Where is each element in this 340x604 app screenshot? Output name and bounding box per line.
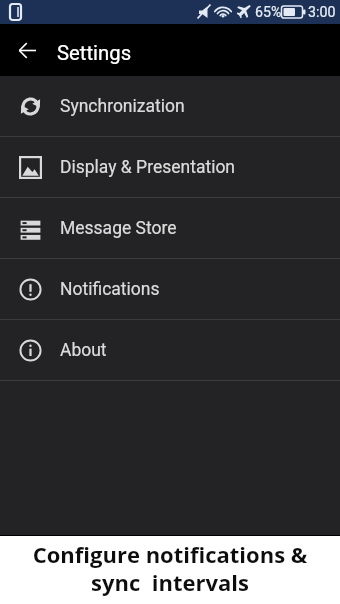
staticText: Configure notifications & sync intervals: [0, 539, 340, 598]
staticText: 3:00: [308, 4, 336, 21]
button[interactable]: Display & Presentation: [0, 137, 340, 197]
staticText: Display & Presentation: [60, 157, 236, 178]
staticText: Notifications: [60, 279, 160, 300]
button[interactable]: Synchronization: [0, 76, 340, 136]
button[interactable]: Back: [0, 24, 54, 76]
staticText: Message Store: [60, 218, 177, 239]
button[interactable]: Message Store: [0, 198, 340, 258]
staticText: Synchronization: [60, 96, 185, 117]
button[interactable]: Notifications: [0, 259, 340, 319]
staticText: 65%: [255, 4, 282, 21]
staticText: Settings: [57, 41, 132, 65]
staticText: About: [60, 340, 107, 361]
button[interactable]: About: [0, 320, 340, 380]
